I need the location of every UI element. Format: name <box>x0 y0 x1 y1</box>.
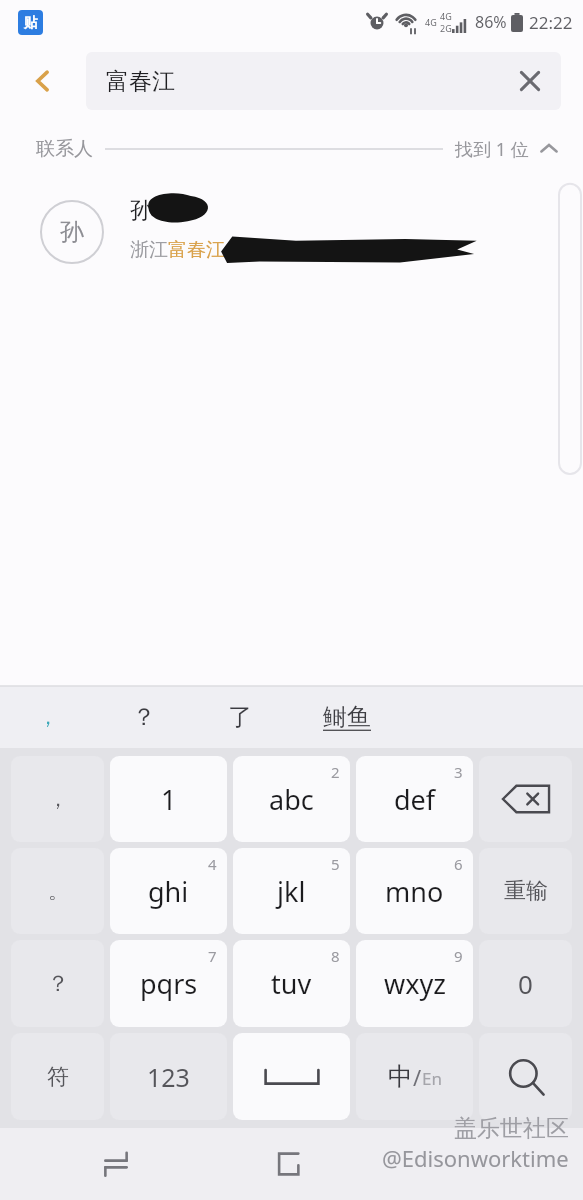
staticText: 中 <box>388 1061 413 1092</box>
button[interactable]: ？ <box>96 686 192 748</box>
staticText: 1 <box>161 781 177 818</box>
button[interactable]: mno <box>356 848 473 934</box>
staticText: 浙江富春江 <box>130 238 225 262</box>
button[interactable]: pqrs <box>110 940 227 1027</box>
button[interactable]: 鲥鱼 <box>287 686 407 748</box>
staticText: 3 <box>454 762 463 782</box>
button[interactable]: Back <box>265 1140 313 1188</box>
staticText: ， <box>48 787 68 812</box>
staticText: 22:22 <box>529 11 573 34</box>
staticText: 重输 <box>504 877 548 905</box>
staticText: 孙 <box>130 196 153 225</box>
staticText: 富春江 <box>106 67 499 96</box>
button[interactable]: Recents <box>92 1140 140 1188</box>
button[interactable]: Switch language <box>356 1033 473 1120</box>
staticText: 联系人 <box>36 137 93 161</box>
button[interactable]: 。 <box>11 848 104 934</box>
button[interactable]: 富春江 <box>86 52 561 110</box>
staticText: def <box>394 781 436 818</box>
staticText: 9 <box>454 946 463 966</box>
button[interactable]: Space <box>233 1033 350 1120</box>
button[interactable]: ， <box>0 686 96 748</box>
button[interactable]: tuv <box>233 940 350 1027</box>
staticText: 0 <box>518 966 533 1001</box>
staticText: 123 <box>147 1060 190 1094</box>
button[interactable]: Backspace <box>479 756 572 842</box>
staticText: 7 <box>208 946 217 966</box>
staticText: 5 <box>331 854 340 874</box>
staticText: 了 <box>228 702 252 732</box>
staticText: ？ <box>132 702 156 732</box>
staticText: mno <box>385 873 444 910</box>
button[interactable]: def <box>356 756 473 842</box>
staticText: 贴 <box>24 14 38 32</box>
button[interactable]: 123 <box>110 1033 227 1120</box>
staticText: 8 <box>331 946 340 966</box>
staticText: 孙 <box>60 217 84 247</box>
staticText: 4G <box>425 16 437 28</box>
button[interactable]: 了 <box>192 686 287 748</box>
staticText: tuv <box>271 965 312 1002</box>
staticText: pqrs <box>140 965 198 1002</box>
button[interactable]: Search <box>479 1033 572 1120</box>
staticText: 符 <box>47 1063 69 1091</box>
button[interactable]: 符 <box>11 1033 104 1120</box>
button[interactable]: jkl <box>233 848 350 934</box>
button[interactable]: Clear <box>499 52 561 110</box>
button[interactable]: 1 <box>110 756 227 842</box>
button[interactable]: 孙 <box>0 180 583 284</box>
staticText: 盖乐世社区 <box>454 1114 569 1143</box>
button[interactable]: 联系人 <box>0 118 583 180</box>
staticText: 4G <box>440 10 452 22</box>
staticText: 86% <box>475 11 507 33</box>
button[interactable]: Back <box>0 44 86 118</box>
staticText: 2G <box>440 22 452 34</box>
button[interactable]: 0 <box>479 940 572 1027</box>
button[interactable]: wxyz <box>356 940 473 1027</box>
staticText: wxyz <box>384 965 446 1002</box>
staticText: abc <box>269 781 314 818</box>
staticText: En <box>422 1067 442 1090</box>
staticText: ？ <box>47 970 69 998</box>
staticText: ghi <box>148 873 189 910</box>
button[interactable]: ghi <box>110 848 227 934</box>
staticText: 2 <box>331 762 340 782</box>
button[interactable]: 重输 <box>479 848 572 934</box>
staticText: 。 <box>48 879 68 904</box>
staticText: 6 <box>454 854 463 874</box>
staticText: ， <box>38 705 58 730</box>
button[interactable]: ？ <box>11 940 104 1027</box>
button[interactable]: ， <box>11 756 104 842</box>
staticText: / <box>413 1062 422 1092</box>
staticText: 4 <box>208 854 217 874</box>
staticText: 找到 1 位 <box>455 137 529 162</box>
button[interactable]: abc <box>233 756 350 842</box>
staticText: 鲥鱼 <box>323 702 371 732</box>
staticText: jkl <box>277 873 306 910</box>
staticText: @Edisonworktime <box>382 1143 569 1173</box>
